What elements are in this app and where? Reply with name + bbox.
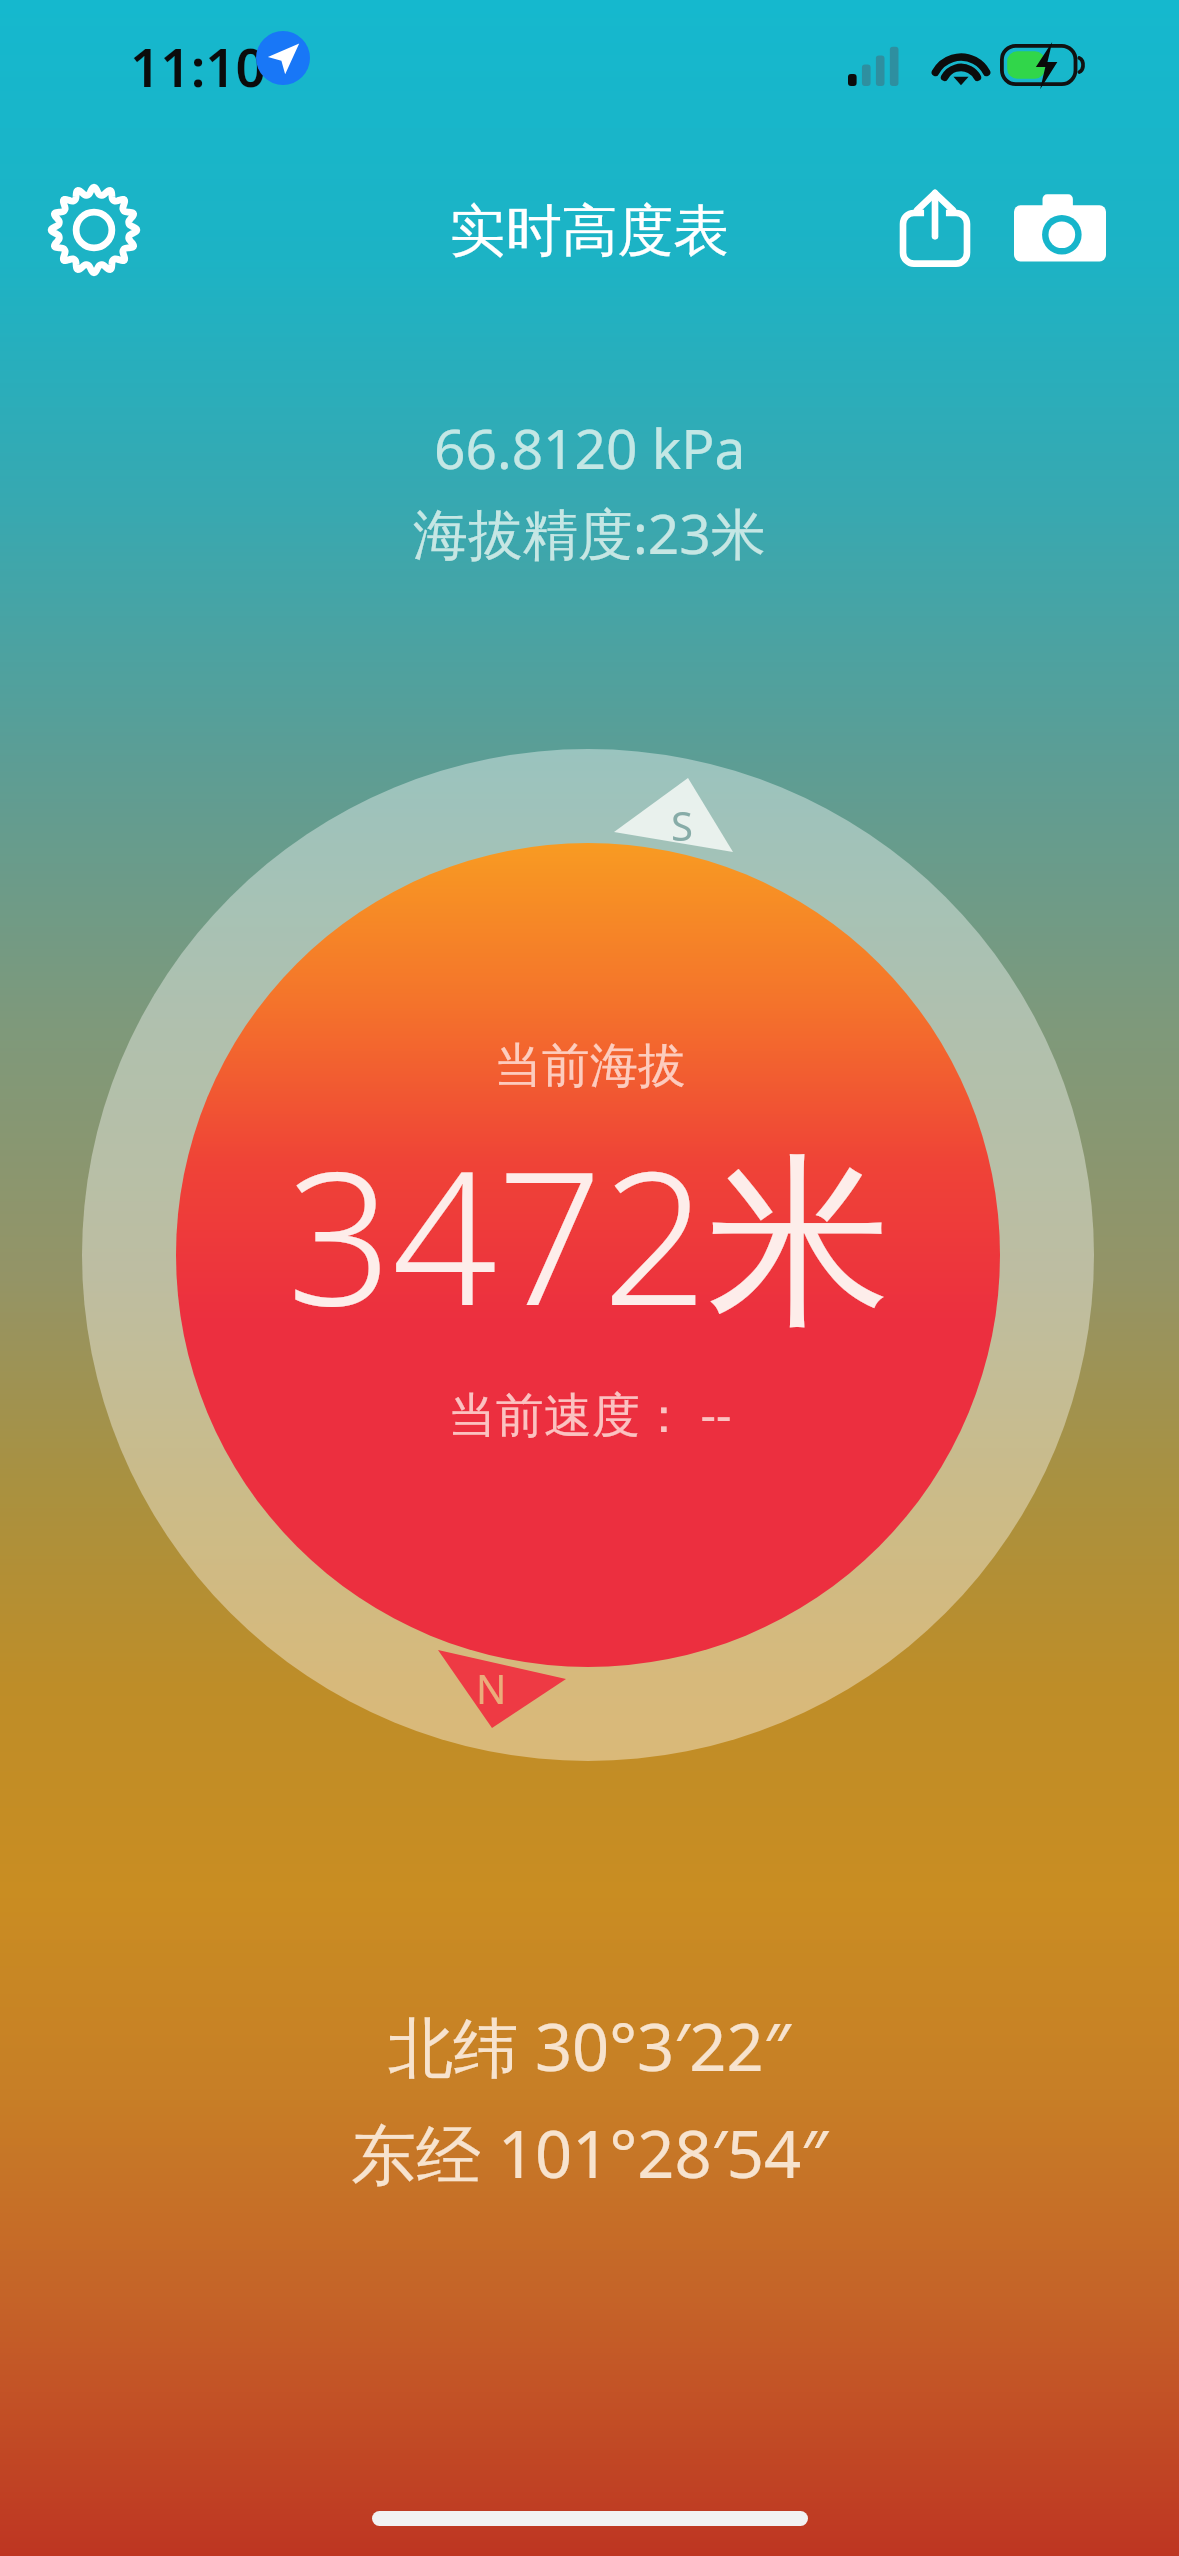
button[interactable]: Settings [34,170,154,290]
staticText: 11:10 [130,30,266,102]
staticText: 东经 101°28′54″ [351,2109,828,2198]
button[interactable]: Share [880,172,990,282]
staticText: 66.8120 kPa [434,410,746,485]
staticText: 当前速度： -- [448,1381,732,1447]
staticText: N [476,1661,507,1715]
staticText: S [671,798,693,852]
button[interactable]: Camera [1000,172,1120,292]
staticText: 实时高度表 [0,196,1179,267]
staticText: 北纬 30°3′22″ [388,2002,791,2091]
staticText: 3472米 [287,1108,892,1359]
staticText: 海拔精度:23米 [413,495,766,570]
staticText: 当前海拔 [494,1036,686,1096]
